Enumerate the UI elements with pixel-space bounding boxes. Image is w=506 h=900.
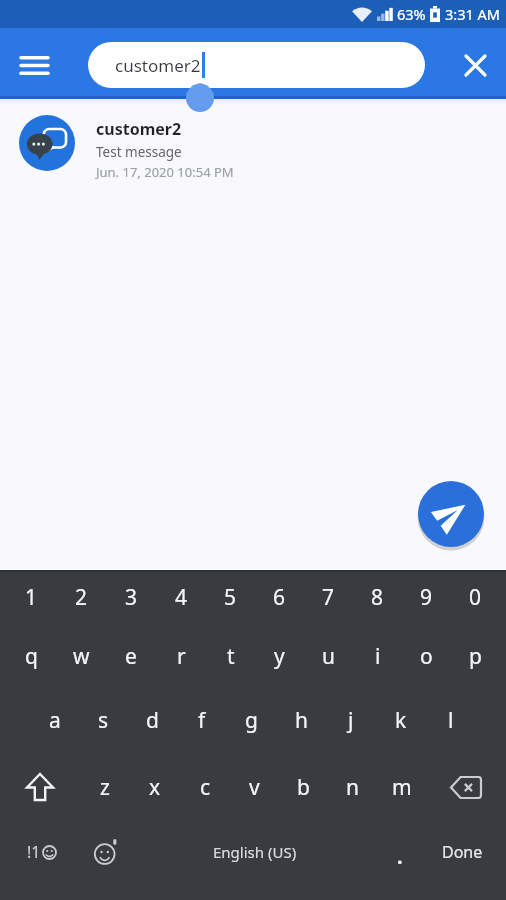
button[interactable]: p [451, 641, 500, 671]
staticText: v [249, 773, 260, 802]
button[interactable]: d [128, 705, 177, 735]
button[interactable]: x [130, 770, 180, 804]
staticText: 9 [420, 583, 433, 612]
staticText: h [295, 706, 308, 735]
button[interactable]: !1 [0, 834, 84, 870]
staticText: s [98, 706, 109, 735]
staticText: 2 [75, 583, 88, 612]
staticText: customer2 [115, 54, 201, 77]
staticText: Jun. 17, 2020 10:54 PM [96, 163, 234, 181]
button[interactable] [20, 51, 48, 79]
button[interactable]: e [106, 641, 156, 671]
button[interactable]: k [376, 705, 426, 735]
button[interactable]: 1 [6, 582, 56, 612]
button[interactable]: u [304, 641, 353, 671]
button[interactable]: b [279, 770, 328, 804]
staticText: p [469, 642, 482, 671]
button[interactable]: n [328, 770, 377, 804]
staticText: 0 [469, 583, 482, 612]
staticText: d [146, 706, 159, 735]
button[interactable]: l [426, 705, 476, 735]
staticText: q [25, 642, 38, 671]
button[interactable]: 9 [402, 582, 451, 612]
button[interactable] [426, 770, 506, 804]
staticText: l [448, 706, 454, 735]
staticText: k [395, 706, 407, 735]
button[interactable] [463, 53, 487, 77]
button[interactable]: English (US) [128, 834, 382, 870]
staticText: z [100, 773, 110, 802]
button[interactable]: w [56, 641, 106, 671]
button[interactable]: 7 [304, 582, 353, 612]
staticText: j [348, 706, 354, 735]
staticText: w [73, 642, 90, 671]
staticText: !1 [27, 841, 41, 863]
button[interactable]: 8 [353, 582, 402, 612]
button[interactable]: customer2 [19, 115, 506, 181]
button[interactable] [84, 834, 128, 870]
staticText: r [177, 642, 186, 671]
staticText: a [49, 706, 61, 735]
button[interactable]: i [353, 641, 402, 671]
staticText: g [245, 706, 258, 735]
staticText: e [125, 642, 137, 671]
button[interactable]: g [226, 705, 276, 735]
button[interactable] [0, 770, 80, 804]
button[interactable]: 5 [206, 582, 255, 612]
staticText: 7 [322, 583, 335, 612]
staticText: u [322, 642, 335, 671]
button[interactable]: y [255, 641, 304, 671]
staticText: English (US) [213, 842, 297, 862]
staticText: m [392, 773, 412, 802]
button[interactable]: customer2 [88, 42, 425, 88]
staticText: Test message [96, 143, 182, 161]
button[interactable]: o [402, 641, 451, 671]
button[interactable]: 6 [255, 582, 304, 612]
button[interactable]: f [177, 705, 226, 735]
staticText: t [227, 642, 235, 671]
button[interactable]: 0 [451, 582, 500, 612]
button[interactable]: m [377, 770, 426, 804]
button[interactable]: a [30, 705, 79, 735]
staticText: 5 [224, 583, 237, 612]
staticText: 1 [25, 583, 38, 612]
button[interactable]: 3 [106, 582, 156, 612]
button[interactable]: s [79, 705, 128, 735]
staticText: 6 [273, 583, 286, 612]
staticText: x [149, 773, 161, 802]
button[interactable]: 2 [56, 582, 106, 612]
button[interactable]: t [206, 641, 255, 671]
staticText: 8 [371, 583, 384, 612]
staticText: o [420, 642, 433, 671]
staticText: 63% [397, 4, 426, 24]
button[interactable]: q [6, 641, 56, 671]
button[interactable]: z [80, 770, 130, 804]
button[interactable]: v [230, 770, 279, 804]
staticText: 4 [175, 583, 188, 612]
button[interactable]: Done [418, 834, 506, 870]
button[interactable]: h [276, 705, 326, 735]
staticText: 3 [125, 583, 138, 612]
staticText: 3:31 AM [445, 4, 500, 24]
staticText: Done [442, 841, 483, 863]
staticText: y [274, 642, 285, 671]
button[interactable]: r [156, 641, 206, 671]
button[interactable]: 4 [156, 582, 206, 612]
staticText: . [397, 843, 403, 870]
staticText: customer2 [96, 118, 182, 140]
staticText: b [297, 773, 310, 802]
button[interactable]: c [180, 770, 230, 804]
button[interactable] [418, 481, 484, 547]
staticText: n [346, 773, 359, 802]
button[interactable]: . [382, 834, 418, 870]
button[interactable]: j [326, 705, 376, 735]
staticText: i [375, 642, 381, 671]
staticText: c [200, 773, 211, 802]
staticText: f [198, 706, 206, 735]
